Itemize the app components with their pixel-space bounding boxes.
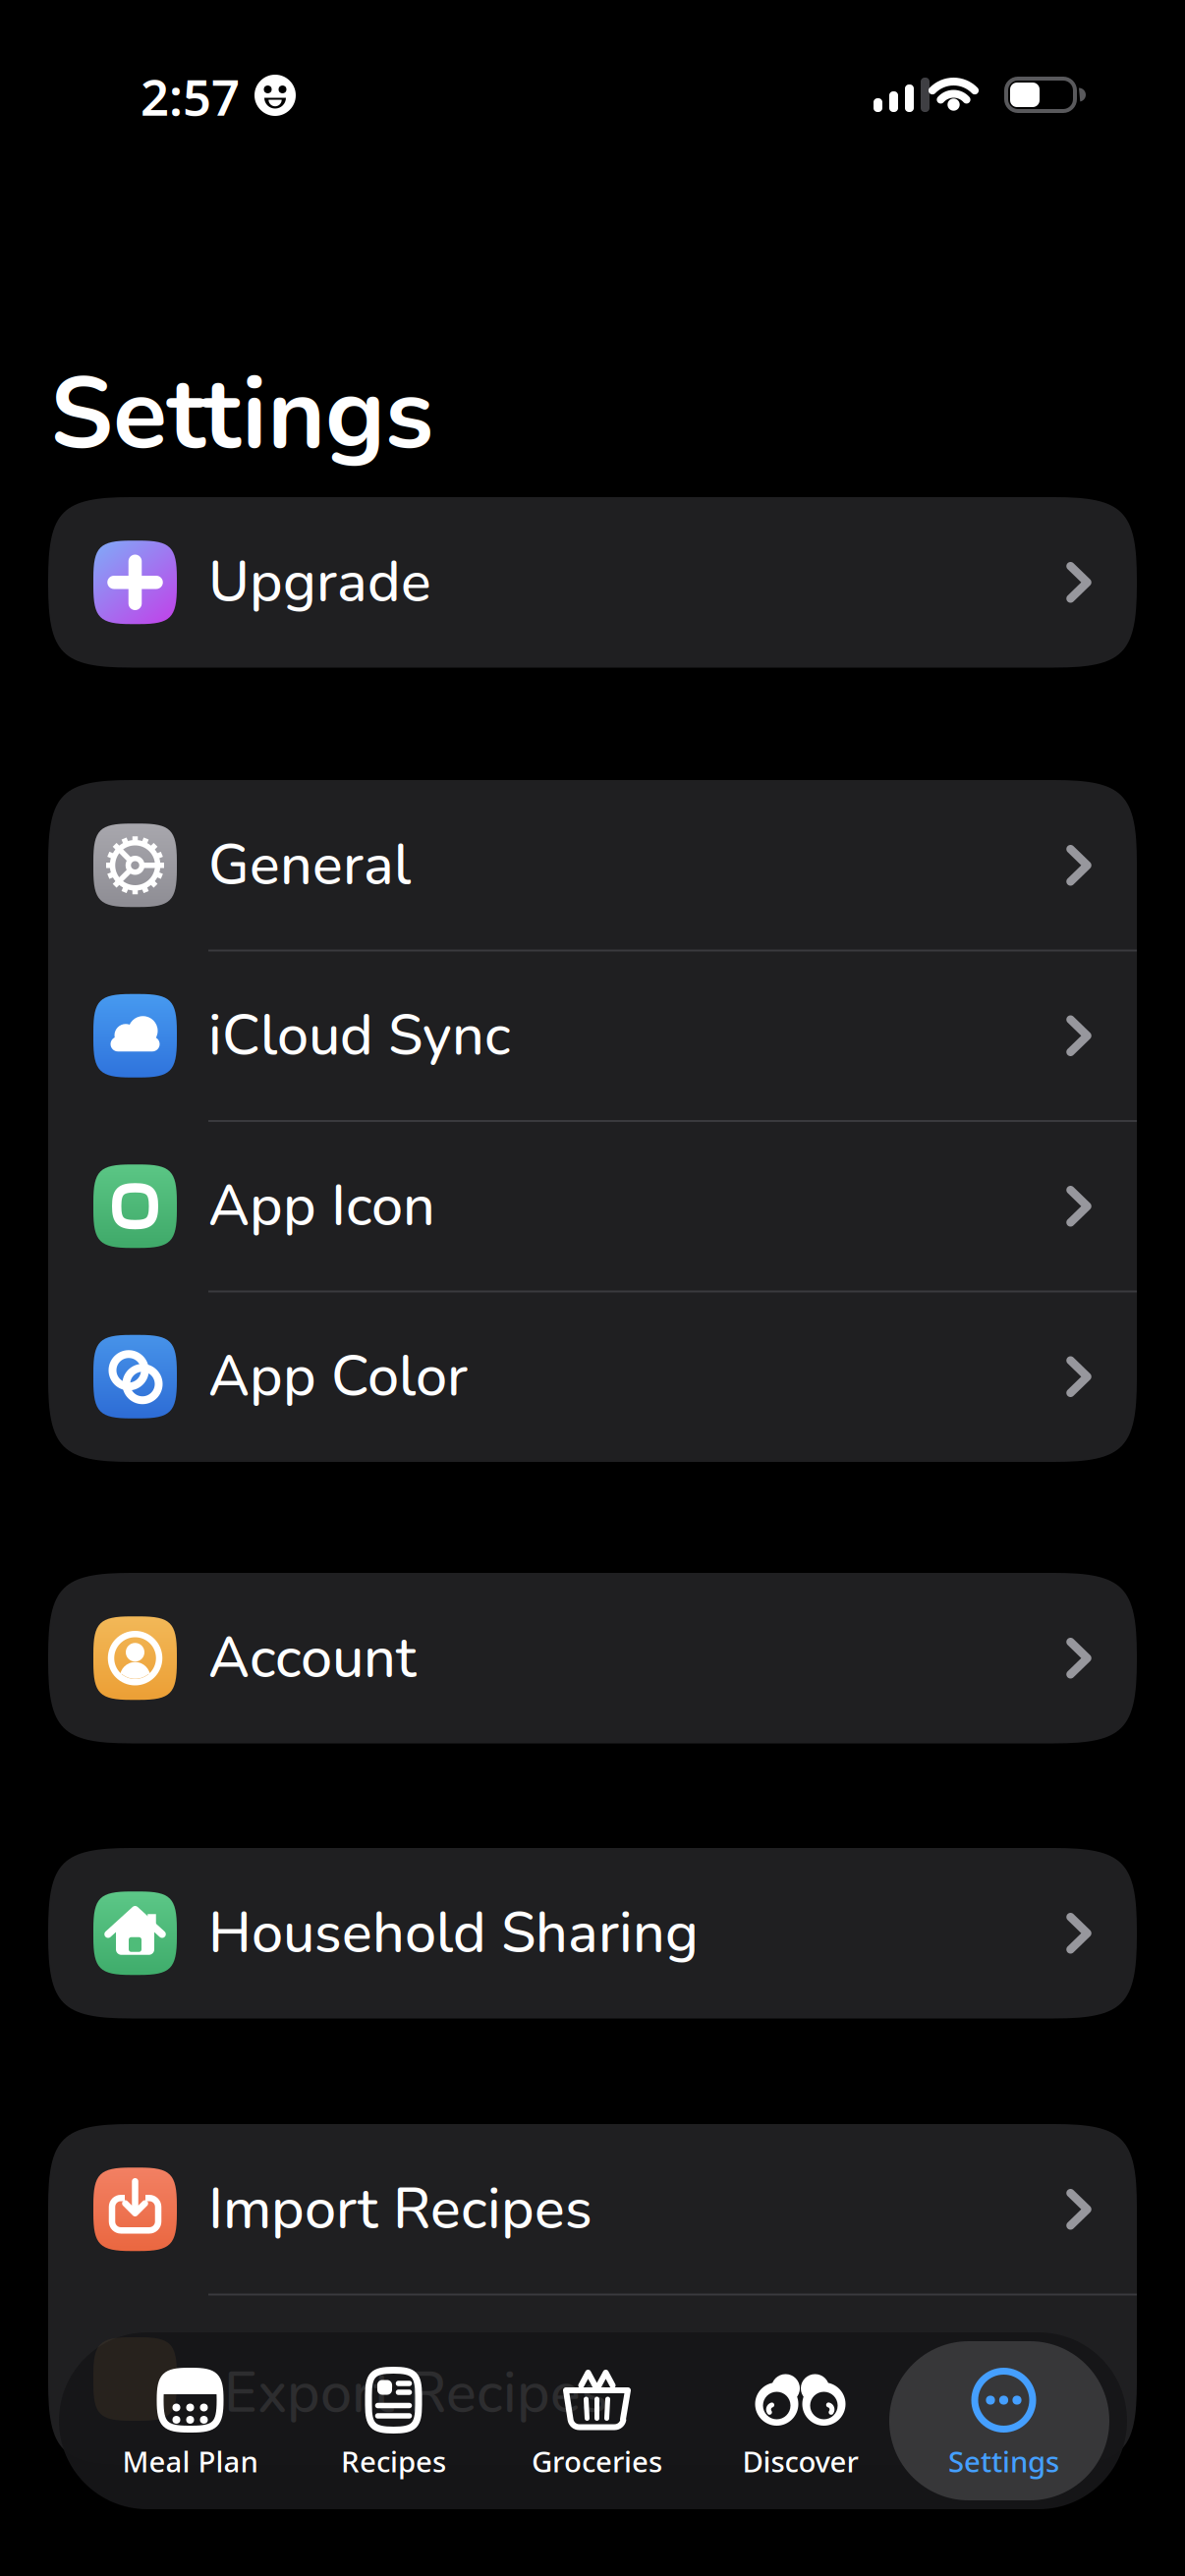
staticText: Account (208, 1620, 417, 1697)
button[interactable]: Meal Plan (88, 2360, 292, 2482)
button[interactable]: Upgrade (48, 497, 1137, 668)
button[interactable]: iCloud Sync (48, 951, 1137, 1121)
button[interactable]: App Icon (48, 1121, 1137, 1291)
button[interactable]: Import Recipes (48, 2124, 1137, 2295)
staticText: iCloud Sync (208, 997, 511, 1074)
staticText: Settings (948, 2442, 1059, 2480)
button[interactable]: Recipes (292, 2360, 495, 2482)
staticText: Meal Plan (122, 2442, 258, 2480)
staticText: General (208, 827, 411, 904)
staticText: Import Recipes (208, 2171, 592, 2248)
button[interactable]: Settings (902, 2360, 1105, 2482)
button[interactable]: Groceries (495, 2360, 699, 2482)
staticText: Groceries (532, 2442, 662, 2480)
button[interactable]: Household Sharing (48, 1848, 1137, 2018)
staticText: 2:57 (141, 63, 240, 129)
staticText: Export Recipes (224, 2355, 608, 2432)
button[interactable]: Account (48, 1573, 1137, 1743)
staticText: Household Sharing (208, 1895, 699, 1972)
staticText: Upgrade (208, 544, 431, 621)
button[interactable]: Discover (699, 2360, 902, 2482)
staticText: Settings (50, 347, 433, 482)
staticText: App Icon (208, 1168, 435, 1245)
button[interactable]: General (48, 780, 1137, 951)
button[interactable]: App Color (48, 1291, 1137, 1462)
staticText: App Color (208, 1338, 468, 1415)
staticText: Discover (742, 2442, 858, 2480)
staticText: Recipes (341, 2442, 446, 2480)
